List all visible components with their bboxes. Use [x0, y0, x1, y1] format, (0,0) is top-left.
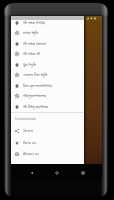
staticText: श्री विष्णु सहस्रनाम: [23, 104, 49, 109]
button[interactable]: श्री गणेश (कवच): [11, 38, 84, 49]
button[interactable]: श्री गणेश स्तोत्रम्: [11, 17, 84, 28]
staticText: शिव मूल कवचस्तोत्रम्: [23, 83, 52, 88]
button[interactable]: शिव मूल कवचस्तोत्रम्: [11, 80, 84, 91]
button[interactable]: Recent apps: [77, 167, 88, 178]
button[interactable]: Back: [26, 167, 37, 178]
staticText: श्री गणेश (कवच): [23, 41, 46, 46]
staticText: श्रीहनुमानस्तवनम्: [23, 93, 47, 98]
staticText: भगवान शिव स्तुति: [23, 72, 48, 77]
button[interactable]: About us: [11, 148, 84, 159]
staticText: Communicate: [15, 117, 36, 121]
button[interactable]: गणेश स्तुति: [11, 27, 84, 38]
staticText: श्री गणेश स्तोत्रम्: [23, 20, 46, 25]
button[interactable]: Home: [51, 167, 62, 178]
button[interactable]: भगवान शिव स्तुति: [11, 69, 84, 80]
staticText: श्री गणेश जी: [23, 51, 40, 56]
staticText: About us: [23, 151, 39, 156]
staticText: दुर्गा स्तुति: [23, 62, 36, 67]
button[interactable]: Rate us: [11, 137, 84, 148]
button[interactable]: Share: [11, 125, 84, 136]
staticText: गणेश स्तुति: [23, 30, 39, 35]
button[interactable]: दुर्गा स्तुति: [11, 59, 84, 70]
staticText: Share: [23, 128, 34, 133]
staticText: Rate us: [23, 140, 37, 145]
button[interactable]: श्री विष्णु सहस्रनाम: [11, 101, 84, 112]
button[interactable]: श्री गणेश जी: [11, 48, 84, 59]
button[interactable]: श्रीहनुमानस्तवनम्: [11, 90, 84, 101]
